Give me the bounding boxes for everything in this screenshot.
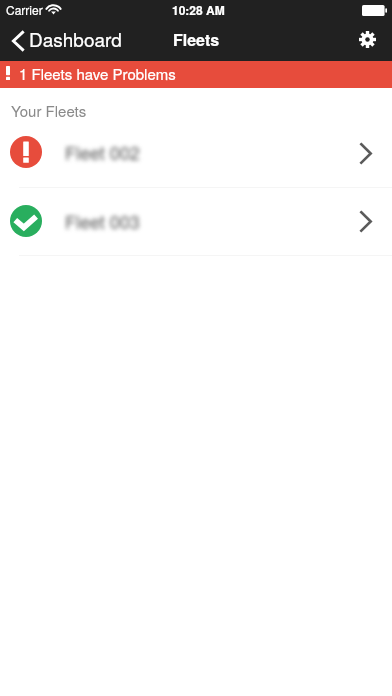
button[interactable]: Fleet 002 bbox=[0, 119, 392, 187]
button[interactable]: Dashboard bbox=[0, 18, 132, 58]
staticText: Fleets bbox=[173, 28, 220, 51]
staticText: Dashboard bbox=[29, 25, 122, 52]
staticText: Carrier bbox=[6, 1, 43, 18]
staticText: Fleet 002 bbox=[65, 139, 140, 165]
staticText: 10:28 AM bbox=[172, 1, 225, 18]
button[interactable]: Fleet 003 bbox=[0, 188, 392, 255]
button[interactable]: Settings bbox=[349, 19, 392, 59]
staticText: Your Fleets bbox=[11, 100, 87, 121]
button[interactable]: 1 Fleets have Problems bbox=[0, 61, 392, 88]
staticText: Fleet 003 bbox=[65, 208, 140, 234]
staticText: 1 Fleets have Problems bbox=[19, 63, 176, 84]
